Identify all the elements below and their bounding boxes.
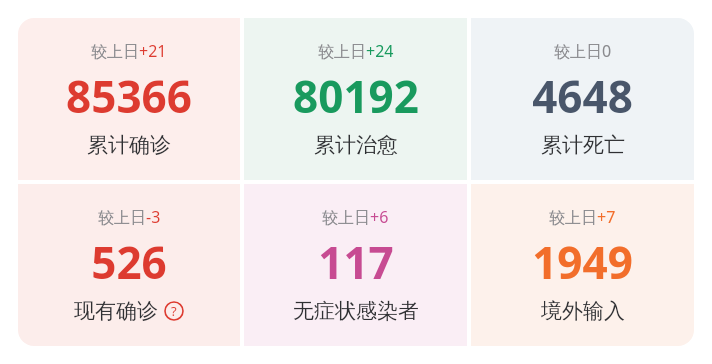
staticText: 80192 <box>293 66 419 126</box>
staticText: 1949 <box>532 232 633 292</box>
staticText: 累计治愈 <box>314 132 398 158</box>
staticText: ? <box>171 302 177 320</box>
staticText: 较上日 <box>554 42 602 62</box>
button[interactable]: 说明 <box>164 301 184 321</box>
button[interactable]: 较上日 <box>471 18 694 180</box>
staticText: 现有确诊 <box>74 298 158 324</box>
button[interactable]: 较上日 <box>18 184 240 346</box>
staticText: 较上日 <box>98 208 146 228</box>
staticText: +21 <box>139 40 167 62</box>
staticText: 较上日 <box>549 208 597 228</box>
staticText: 85366 <box>66 66 192 126</box>
staticText: 0 <box>602 40 612 62</box>
staticText: 较上日 <box>91 42 139 62</box>
staticText: 境外输入 <box>541 298 625 324</box>
staticText: 4648 <box>532 66 633 126</box>
button[interactable]: 较上日 <box>244 184 467 346</box>
staticText: 较上日 <box>322 208 370 228</box>
staticText: +6 <box>370 206 389 228</box>
staticText: 117 <box>318 232 394 292</box>
staticText: 累计死亡 <box>541 132 625 158</box>
staticText: 较上日 <box>318 42 366 62</box>
staticText: +24 <box>366 40 394 62</box>
button[interactable]: 较上日 <box>244 18 467 180</box>
button[interactable]: 较上日 <box>18 18 240 180</box>
staticText: +7 <box>597 206 616 228</box>
staticText: 累计确诊 <box>87 132 171 158</box>
staticText: -3 <box>146 206 161 228</box>
staticText: 无症状感染者 <box>293 298 419 324</box>
staticText: 526 <box>91 232 167 292</box>
button[interactable]: 较上日 <box>471 184 694 346</box>
